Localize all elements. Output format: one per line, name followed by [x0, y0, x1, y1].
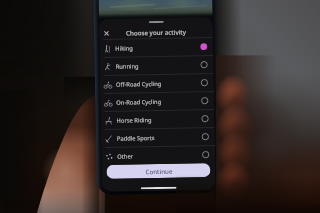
- button[interactable]: Horse Riding: [100, 110, 215, 129]
- button[interactable]: Paddle Sports: [101, 128, 215, 147]
- staticText: Horse Riding: [116, 116, 153, 125]
- button[interactable]: Hiking: [99, 38, 213, 57]
- staticText: Other: [117, 152, 133, 161]
- button[interactable]: On-Road Cycling: [100, 92, 214, 111]
- staticText: On-Road Cycling: [116, 98, 161, 107]
- button[interactable]: Running: [99, 56, 214, 75]
- staticText: Running: [116, 62, 139, 71]
- button[interactable]: Continue: [106, 163, 210, 179]
- staticText: Off-Road Cycling: [116, 80, 162, 89]
- staticText: Paddle Sports: [117, 134, 155, 143]
- button[interactable]: Close: [102, 29, 111, 38]
- staticText: Continue: [145, 167, 172, 175]
- button[interactable]: Off-Road Cycling: [100, 74, 214, 93]
- staticText: Hiking: [115, 44, 133, 53]
- staticText: Choose your activity: [126, 27, 186, 36]
- button[interactable]: Other: [101, 146, 215, 165]
